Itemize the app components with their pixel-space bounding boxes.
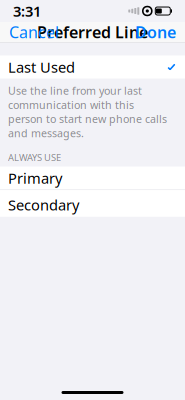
staticText: Secondary bbox=[8, 195, 79, 215]
staticText: Preferred Line bbox=[37, 21, 148, 43]
button[interactable]: Cancel bbox=[0, 22, 68, 42]
button[interactable]: Primary bbox=[0, 167, 185, 190]
button[interactable]: Secondary bbox=[0, 190, 185, 236]
staticText: ALWAYS USE bbox=[8, 151, 61, 164]
staticText: Done bbox=[135, 21, 176, 43]
button[interactable]: Last Used bbox=[0, 55, 185, 78]
staticText: Cancel bbox=[9, 21, 59, 43]
staticText: Use the line from your last communicatio… bbox=[8, 83, 167, 140]
staticText: Last Used bbox=[8, 57, 75, 77]
staticText: 3:31 bbox=[13, 1, 41, 21]
button[interactable]: Done bbox=[126, 22, 185, 42]
staticText: Primary bbox=[8, 168, 62, 188]
